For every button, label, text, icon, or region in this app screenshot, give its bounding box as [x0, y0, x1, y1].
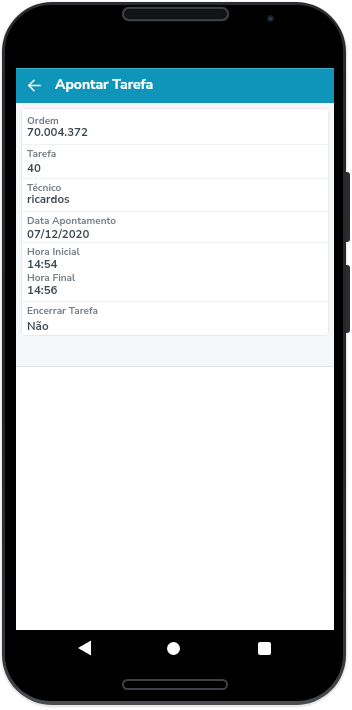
- staticText: Hora Inicial: [27, 245, 80, 259]
- button[interactable]: [258, 642, 271, 655]
- staticText: ricardos: [27, 191, 70, 207]
- staticText: Tarefa: [27, 147, 57, 161]
- staticText: Ordem: [27, 114, 59, 128]
- button[interactable]: Ordem: [21, 108, 329, 336]
- staticText: Apontar Tarefa: [55, 75, 154, 94]
- staticText: 40: [27, 160, 41, 176]
- staticText: Hora Final: [27, 271, 76, 285]
- staticText: 14:54: [27, 256, 58, 272]
- staticText: 70.004.372: [27, 124, 88, 140]
- button[interactable]: [28, 79, 41, 92]
- staticText: Data Apontamento: [27, 214, 117, 228]
- staticText: 14:56: [27, 282, 58, 298]
- button[interactable]: [167, 642, 180, 655]
- button[interactable]: [78, 640, 91, 656]
- staticText: Encerrar Tarefa: [27, 304, 98, 318]
- staticText: 07/12/2020: [27, 226, 90, 242]
- button[interactable]: Apontar Tarefa: [16, 68, 334, 103]
- staticText: Técnico: [27, 181, 62, 195]
- staticText: Não: [27, 318, 49, 334]
